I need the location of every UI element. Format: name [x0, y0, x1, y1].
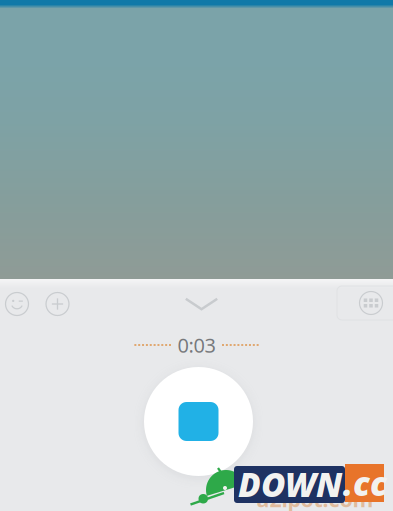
staticText: .cc [343, 461, 387, 505]
staticText: a2ipot.com [256, 485, 373, 511]
button[interactable]: Emoji [0, 283, 37, 324]
staticText: 0:03 [177, 332, 215, 358]
button[interactable]: Collapse keyboard [171, 283, 231, 324]
button[interactable]: Keypad [337, 286, 393, 320]
button[interactable]: Stop recording [144, 367, 253, 476]
button[interactable]: Add attachment [37, 283, 78, 324]
staticText: DOWN [238, 462, 342, 506]
